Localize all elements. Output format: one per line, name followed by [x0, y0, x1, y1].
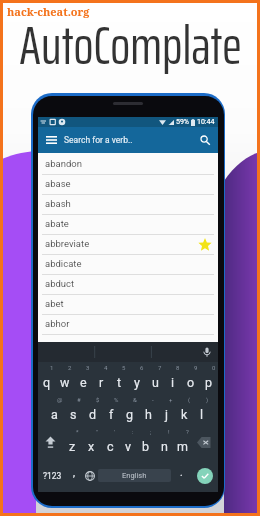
staticText: 59%: [176, 118, 189, 126]
staticText: t: [117, 375, 122, 390]
button[interactable]: Backspace: [191, 426, 218, 459]
button[interactable]: ,: [66, 459, 81, 492]
button[interactable]: Shift: [38, 426, 63, 459]
button[interactable]: #: [64, 394, 83, 426]
button[interactable]: 9: [182, 362, 200, 394]
button[interactable]: abdicate: [38, 255, 218, 275]
button[interactable]: 7: [146, 362, 164, 394]
staticText: %: [114, 396, 119, 403]
button[interactable]: :: [119, 426, 137, 459]
button[interactable]: ): [193, 394, 211, 426]
button[interactable]: *: [63, 426, 82, 459]
button[interactable]: ?: [173, 426, 191, 459]
button[interactable]: abash: [38, 195, 218, 215]
button[interactable]: abduct: [38, 275, 218, 295]
button[interactable]: abate: [38, 215, 218, 235]
button[interactable]: 1: [38, 362, 56, 394]
button[interactable]: Change language: [81, 459, 98, 492]
staticText: v: [125, 439, 132, 454]
staticText: 10:44: [197, 118, 215, 126]
button[interactable]: 2: [56, 362, 74, 394]
staticText: s: [70, 407, 77, 422]
staticText: #: [77, 396, 81, 403]
staticText: English: [122, 471, 147, 480]
button[interactable]: ?123: [38, 459, 66, 492]
staticText: abduct: [45, 278, 75, 289]
staticText: z: [69, 439, 76, 454]
staticText: y: [134, 375, 140, 390]
staticText: l: [200, 407, 204, 422]
button[interactable]: abet: [38, 295, 218, 315]
staticText: f: [109, 407, 114, 422]
staticText: ): [206, 396, 209, 403]
staticText: -: [152, 396, 154, 403]
staticText: 3: [86, 364, 90, 371]
button[interactable]: ;: [137, 426, 155, 459]
staticText: abate: [45, 218, 69, 229]
button[interactable]: 6: [128, 362, 146, 394]
staticText: &: [133, 396, 137, 403]
button[interactable]: .: [171, 459, 192, 492]
staticText: q: [43, 375, 51, 390]
button[interactable]: Navigation menu: [43, 132, 59, 148]
staticText: u: [152, 375, 159, 390]
staticText: d: [89, 407, 97, 422]
button[interactable]: abandon: [38, 155, 218, 175]
staticText: ": [96, 428, 98, 435]
button[interactable]: abase: [38, 175, 218, 195]
staticText: abandon: [45, 158, 82, 169]
staticText: n: [161, 439, 168, 454]
button[interactable]: Search: [197, 132, 213, 148]
button[interactable]: 0: [200, 362, 218, 394]
staticText: AutoComplate: [19, 4, 242, 87]
staticText: Search for a verb..: [64, 135, 133, 145]
button[interactable]: !: [155, 426, 173, 459]
staticText: ?: [186, 428, 189, 435]
staticText: (: [188, 396, 191, 403]
staticText: g: [126, 407, 134, 422]
staticText: *: [76, 428, 79, 435]
button[interactable]: @: [45, 394, 64, 426]
button[interactable]: %: [102, 394, 121, 426]
button[interactable]: English: [98, 469, 171, 482]
staticText: r: [99, 375, 104, 390]
button[interactable]: ': [101, 426, 119, 459]
staticText: 2: [68, 364, 72, 371]
button[interactable]: 3: [74, 362, 92, 394]
button[interactable]: $: [83, 394, 102, 426]
staticText: i: [171, 375, 175, 390]
staticText: 4: [104, 364, 108, 371]
staticText: abbreviate: [45, 238, 90, 249]
staticText: 0: [212, 364, 216, 371]
staticText: abet: [45, 298, 64, 309]
staticText: +: [169, 396, 173, 403]
staticText: :: [132, 428, 134, 435]
staticText: m: [177, 439, 188, 454]
button[interactable]: (: [175, 394, 193, 426]
staticText: abhor: [45, 318, 70, 329]
button[interactable]: Enter: [192, 459, 218, 492]
staticText: h: [145, 407, 152, 422]
button[interactable]: +: [157, 394, 175, 426]
staticText: abase: [45, 178, 71, 189]
staticText: 9: [194, 364, 198, 371]
button[interactable]: -: [139, 394, 157, 426]
staticText: 8: [176, 364, 180, 371]
button[interactable]: 4: [92, 362, 110, 394]
staticText: abash: [45, 198, 71, 209]
button[interactable]: ": [82, 426, 101, 459]
button[interactable]: abbreviate: [38, 235, 218, 255]
button[interactable]: Voice input: [201, 346, 213, 358]
button[interactable]: &: [121, 394, 139, 426]
button[interactable]: abhor: [38, 315, 218, 335]
button[interactable]: 5: [110, 362, 128, 394]
staticText: ': [114, 428, 116, 435]
staticText: w: [60, 375, 70, 390]
staticText: ;: [150, 428, 152, 435]
button[interactable]: 8: [164, 362, 182, 394]
staticText: hack-cheat.org: [7, 4, 90, 19]
staticText: 1: [50, 364, 54, 371]
staticText: x: [88, 439, 95, 454]
staticText: 6: [140, 364, 144, 371]
staticText: abdicate: [45, 258, 82, 269]
